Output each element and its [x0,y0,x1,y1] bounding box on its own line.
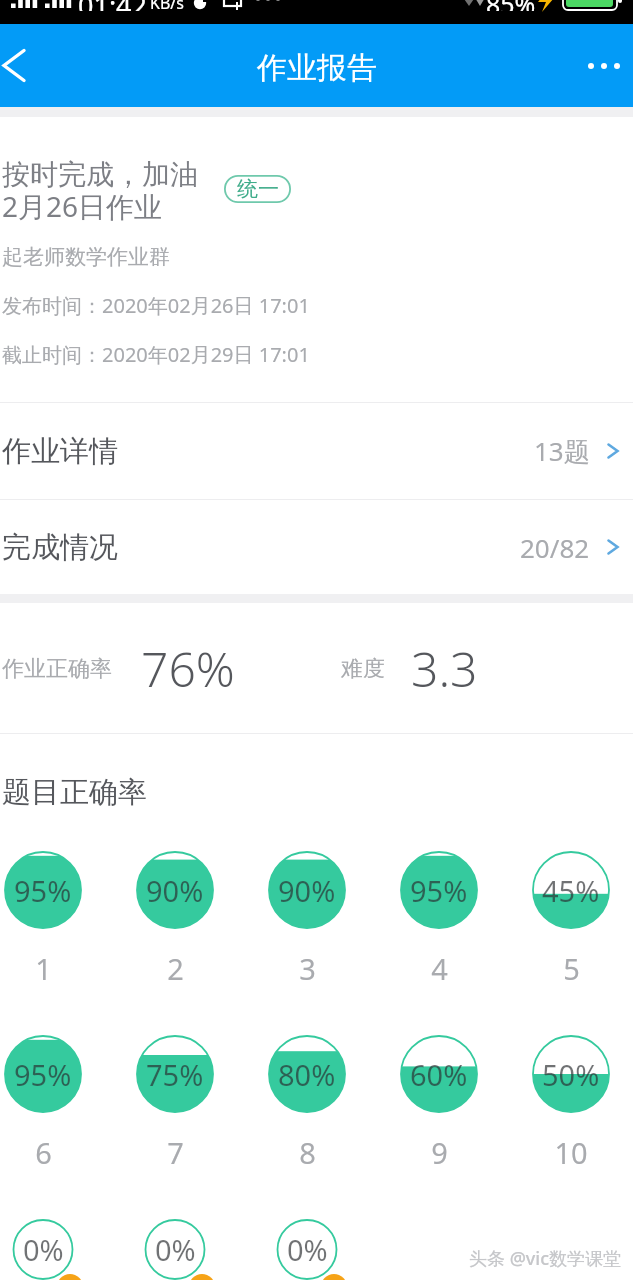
staticText: 8 [299,1133,316,1172]
staticText: 9 [431,1133,448,1172]
staticText: 60% [410,1055,468,1094]
staticText: 完成情况 [2,529,118,566]
staticText: 截止时间：2020年02月29日 17:01 [2,341,310,368]
staticText: 0% [155,1230,196,1269]
staticText: 难度 [341,655,385,683]
staticText: 95% [410,871,468,910]
staticText: 76% [141,636,235,701]
staticText: 发布时间：2020年02月26日 17:01 [2,292,310,319]
staticText: 头条 @vic数学课堂 [469,1246,622,1271]
staticText: 0% [23,1230,64,1269]
staticText: 50% [542,1055,600,1094]
staticText: 80% [278,1055,336,1094]
staticText: 45% [542,871,600,910]
staticText: 01:42 [78,0,148,11]
staticText: 3 [299,949,316,988]
staticText: 作业详情 [2,433,118,470]
staticText: 85% [486,0,536,11]
staticText: 7 [167,1133,184,1172]
staticText: 75% [146,1055,204,1094]
staticText: 2 [167,949,184,988]
staticText: 3.3 [411,636,478,701]
staticText: 90% [146,871,204,910]
staticText: 作业正确率 [2,655,112,683]
staticText: 90% [278,871,336,910]
staticText: 95% [14,871,72,910]
staticText: 0% [287,1230,328,1269]
staticText: 95% [14,1055,72,1094]
staticText: 题目正确率 [2,774,147,811]
staticText: 作业报告 [257,49,377,87]
staticText: 6 [35,1133,52,1172]
button[interactable]: 完成情况 [0,500,633,594]
staticText: 统一 [237,176,279,202]
staticText: 10 [554,1133,588,1172]
staticText: 1 [35,949,52,988]
button[interactable]: Back [0,24,44,107]
staticText: 2月26日作业 [2,187,163,221]
staticText: 按时完成，加油 [2,157,198,191]
staticText: 起老师数学作业群 [2,244,170,270]
staticText: 5 [563,949,580,988]
button[interactable]: More options [573,24,633,107]
staticText: 4 [431,949,448,988]
staticText: KB/s [150,0,184,14]
staticText: 20/82 [520,530,590,565]
staticText: 13题 [534,433,590,469]
button[interactable]: 作业详情 [0,403,633,499]
